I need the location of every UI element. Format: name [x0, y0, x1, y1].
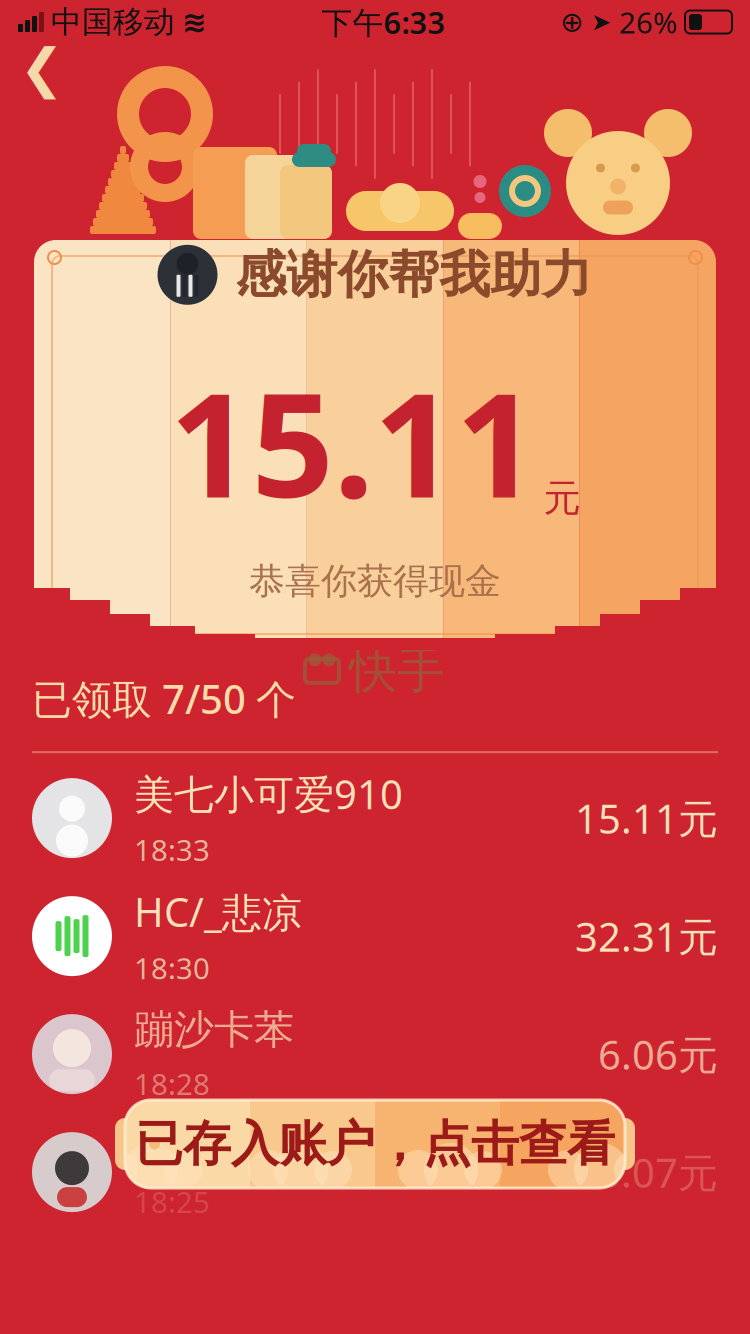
staticText: 美七小可爱910: [134, 767, 403, 820]
staticText: 中国移动: [51, 3, 175, 41]
staticText: 6.06元: [598, 1028, 718, 1081]
staticText: 26%: [619, 2, 677, 41]
staticText: 18:28: [134, 1064, 210, 1103]
staticText: HC/_悲凉: [134, 885, 302, 938]
button[interactable]: HC/_悲凉: [0, 877, 750, 995]
button[interactable]: 已存入账户，点击查看: [105, 1096, 645, 1192]
staticText: ⊕: [560, 6, 583, 38]
button[interactable]: 蹦沙卡苯: [0, 995, 750, 1113]
staticText: 15.11: [169, 346, 537, 537]
staticText: 我为什么是做和号福: [134, 1123, 494, 1172]
staticText: 15.07元: [575, 1146, 718, 1199]
staticText: 下午6:33: [321, 2, 445, 42]
staticText: 快手: [349, 641, 445, 700]
staticText: 18:30: [134, 948, 210, 987]
staticText: 18:25: [134, 1182, 210, 1221]
button[interactable]: 美七小可爱910: [0, 759, 750, 877]
staticText: ≋: [182, 5, 207, 39]
staticText: 32.31元: [575, 910, 718, 963]
staticText: 感谢你帮我助力: [235, 244, 592, 306]
staticText: 恭喜你获得现金: [249, 559, 501, 603]
staticText: 已领取 7/50 个: [32, 672, 296, 725]
staticText: 15.11元: [575, 792, 718, 845]
button[interactable]: 返回: [14, 40, 70, 96]
staticText: 已存入账户，点击查看: [135, 1114, 615, 1173]
staticText: ➤: [591, 8, 611, 36]
staticText: 18:33: [134, 830, 210, 869]
staticText: 元: [543, 475, 580, 521]
staticText: 蹦沙卡苯: [134, 1005, 294, 1054]
button[interactable]: 我为什么是做和号福: [0, 1113, 750, 1231]
staticText: ❮: [19, 38, 64, 98]
